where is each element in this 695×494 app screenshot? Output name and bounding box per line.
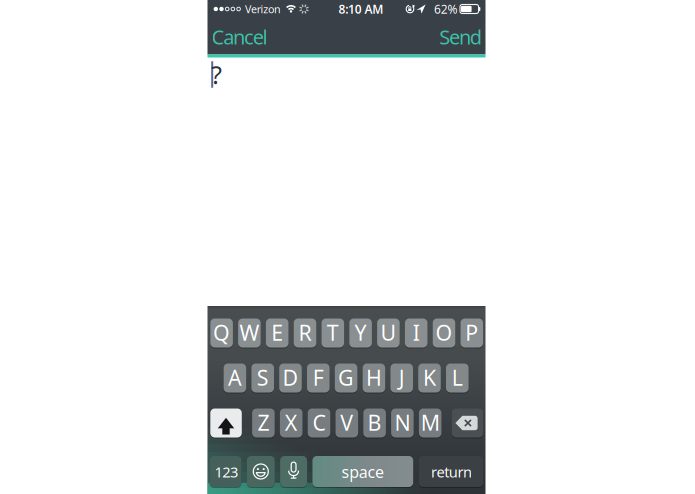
staticText: D: [282, 363, 298, 392]
staticText: Y: [355, 318, 367, 347]
staticText: ?: [211, 57, 222, 91]
staticText: K: [423, 363, 436, 392]
staticText: C: [312, 408, 325, 437]
staticText: V: [340, 408, 353, 437]
staticText: A: [228, 363, 242, 392]
staticText: J: [399, 363, 405, 392]
staticText: X: [285, 408, 298, 437]
staticText: H: [366, 363, 382, 392]
staticText: G: [338, 363, 354, 392]
staticText: I: [413, 318, 420, 347]
staticText: M: [421, 408, 440, 437]
staticText: U: [380, 318, 396, 347]
staticText: Q: [213, 318, 230, 347]
staticText: 62%: [434, 1, 457, 17]
staticText: 123: [215, 462, 238, 482]
staticText: S: [257, 363, 269, 392]
staticText: 8:10 AM: [338, 1, 383, 17]
staticText: E: [271, 318, 283, 347]
staticText: T: [327, 318, 339, 347]
staticText: F: [313, 363, 324, 392]
staticText: Send: [439, 23, 482, 50]
staticText: P: [465, 318, 478, 347]
staticText: B: [368, 408, 382, 437]
staticText: L: [452, 363, 463, 392]
staticText: return: [431, 462, 472, 482]
staticText: Verizon: [245, 2, 281, 16]
staticText: Z: [257, 408, 269, 437]
staticText: Cancel: [211, 23, 267, 50]
staticText: space: [342, 461, 384, 482]
staticText: O: [435, 318, 452, 347]
staticText: W: [239, 318, 259, 347]
staticText: N: [394, 408, 410, 437]
staticText: R: [298, 318, 311, 347]
